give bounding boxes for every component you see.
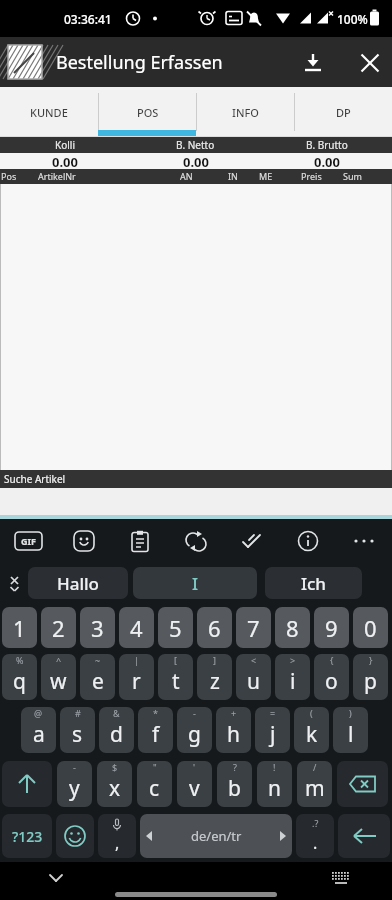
button[interactable]: /	[297, 761, 332, 807]
staticText: {	[330, 654, 334, 666]
staticText: 0.00	[314, 153, 340, 169]
button[interactable]: Hallo	[28, 567, 128, 599]
button[interactable]: "	[137, 761, 172, 807]
button[interactable]	[168, 519, 224, 562]
staticText: B. Netto	[176, 138, 215, 152]
button[interactable]	[336, 519, 392, 562]
staticText: -	[193, 707, 196, 719]
button[interactable]	[112, 519, 168, 562]
button[interactable]: &	[99, 707, 134, 753]
button[interactable]: de/en/tr	[140, 814, 292, 858]
staticText: >	[290, 654, 296, 666]
button[interactable]: I	[133, 567, 257, 599]
button[interactable]	[2, 761, 52, 807]
button[interactable]: 0	[353, 607, 388, 648]
staticText: 0	[364, 613, 377, 643]
staticText: +	[231, 707, 237, 719]
button[interactable]: -	[57, 761, 92, 807]
button[interactable]	[280, 519, 336, 562]
staticText: |	[134, 654, 139, 666]
button[interactable]: Ich	[265, 567, 362, 599]
button[interactable]	[337, 761, 388, 807]
button[interactable]: 6	[197, 607, 232, 648]
staticText: Suche Artikel	[4, 472, 66, 486]
staticText: 03:36:41	[64, 11, 112, 27]
button[interactable]: [	[158, 654, 193, 700]
staticText: *	[153, 707, 158, 719]
button[interactable]: @	[21, 707, 56, 753]
staticText: h	[227, 720, 240, 749]
button[interactable]: 2	[41, 607, 76, 648]
staticText: I	[192, 572, 199, 595]
button[interactable]: !	[257, 761, 292, 807]
button[interactable]: ]	[197, 654, 232, 700]
staticText: 7	[247, 613, 260, 643]
staticText: g	[188, 720, 201, 749]
button[interactable]: ?123	[2, 814, 52, 858]
button[interactable]: #	[60, 707, 95, 753]
button[interactable]: {	[314, 654, 349, 700]
button[interactable]: }	[353, 654, 388, 700]
button[interactable]	[56, 814, 94, 858]
button[interactable]: -	[177, 707, 212, 753]
button[interactable]: ^	[41, 654, 76, 700]
staticText: ME	[259, 170, 273, 182]
staticText: #	[75, 707, 81, 719]
button[interactable]	[325, 864, 357, 892]
button[interactable]: 5	[158, 607, 193, 648]
staticText: z	[210, 667, 220, 696]
staticText: Preis	[301, 170, 322, 182]
button[interactable]: KUNDE	[0, 87, 98, 137]
staticText: n	[268, 774, 281, 803]
button[interactable]	[56, 519, 112, 562]
button[interactable]	[295, 45, 331, 81]
button[interactable]: INFO	[197, 87, 294, 137]
button[interactable]: (	[294, 707, 329, 753]
staticText: j	[270, 720, 276, 749]
staticText: Pos	[1, 170, 17, 182]
button[interactable]: 4	[119, 607, 154, 648]
staticText: b	[228, 774, 241, 803]
button[interactable]: 7	[236, 607, 271, 648]
button[interactable]	[40, 864, 72, 892]
staticText: ]	[213, 654, 216, 666]
button[interactable]	[338, 814, 390, 858]
staticText: POS	[137, 105, 159, 120]
staticText: Kolli	[55, 138, 75, 152]
staticText: i	[290, 667, 296, 696]
staticText: INFO	[232, 105, 259, 120]
button[interactable]: 3	[80, 607, 115, 648]
button[interactable]: 1	[2, 607, 37, 648]
button[interactable]: 8	[275, 607, 310, 648]
button[interactable]: 9	[314, 607, 349, 648]
button[interactable]: *	[138, 707, 173, 753]
button[interactable]: GIF	[0, 519, 56, 562]
button[interactable]: =	[255, 707, 290, 753]
button[interactable]	[224, 519, 280, 562]
button[interactable]: ?	[217, 761, 252, 807]
button[interactable]: '	[177, 761, 212, 807]
staticText: 3	[91, 613, 104, 643]
staticText: x	[109, 774, 121, 803]
staticText: ~	[95, 654, 101, 666]
button[interactable]: |	[119, 654, 154, 700]
button[interactable]	[352, 45, 388, 81]
button[interactable]: +	[216, 707, 251, 753]
button[interactable]: DP	[295, 87, 392, 137]
staticText: }	[369, 654, 373, 666]
staticText: $	[112, 761, 118, 773]
button[interactable]: .?	[296, 814, 334, 858]
staticText: 5	[169, 613, 182, 643]
button[interactable]: ~	[80, 654, 115, 700]
button[interactable]: %	[2, 654, 37, 700]
staticText: s	[72, 720, 83, 749]
staticText: -	[73, 761, 76, 773]
button[interactable]: )	[333, 707, 368, 753]
button[interactable]: <	[236, 654, 271, 700]
staticText: B. Brutto	[306, 138, 348, 152]
button[interactable]: $	[97, 761, 132, 807]
staticText: t	[172, 667, 180, 696]
button[interactable]: POS	[99, 87, 196, 137]
button[interactable]: >	[275, 654, 310, 700]
button[interactable]: ,	[98, 814, 136, 858]
